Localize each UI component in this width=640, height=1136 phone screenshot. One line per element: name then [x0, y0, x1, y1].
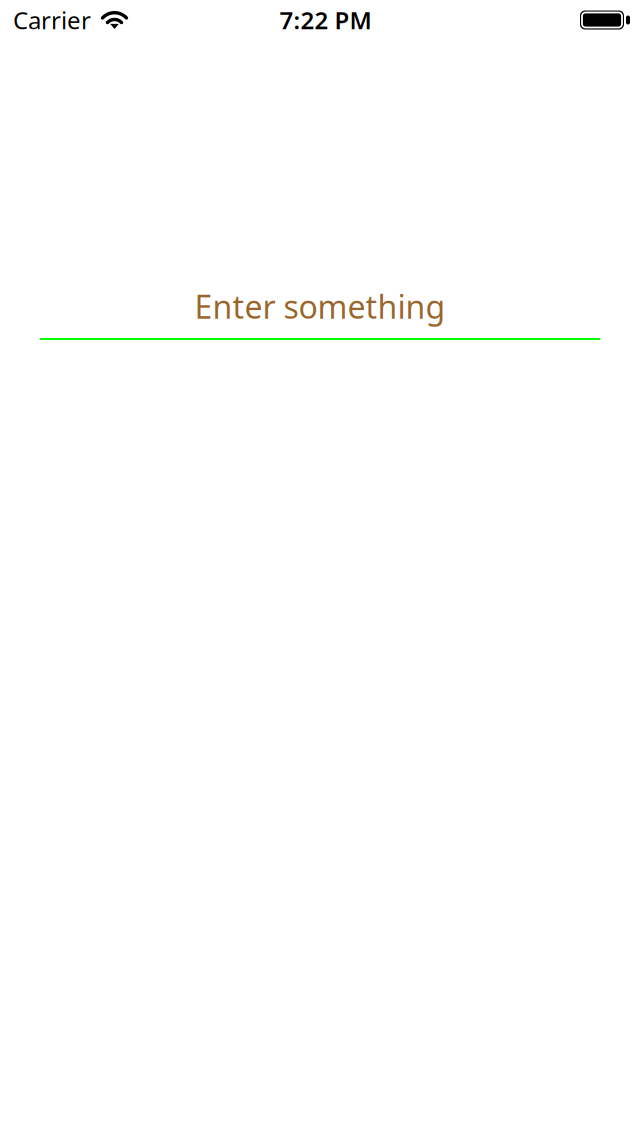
staticText: Enter something	[194, 285, 445, 327]
button[interactable]: Enter something	[40, 285, 600, 340]
staticText: 7:22 PM	[279, 4, 371, 36]
staticText: Carrier	[13, 4, 91, 36]
